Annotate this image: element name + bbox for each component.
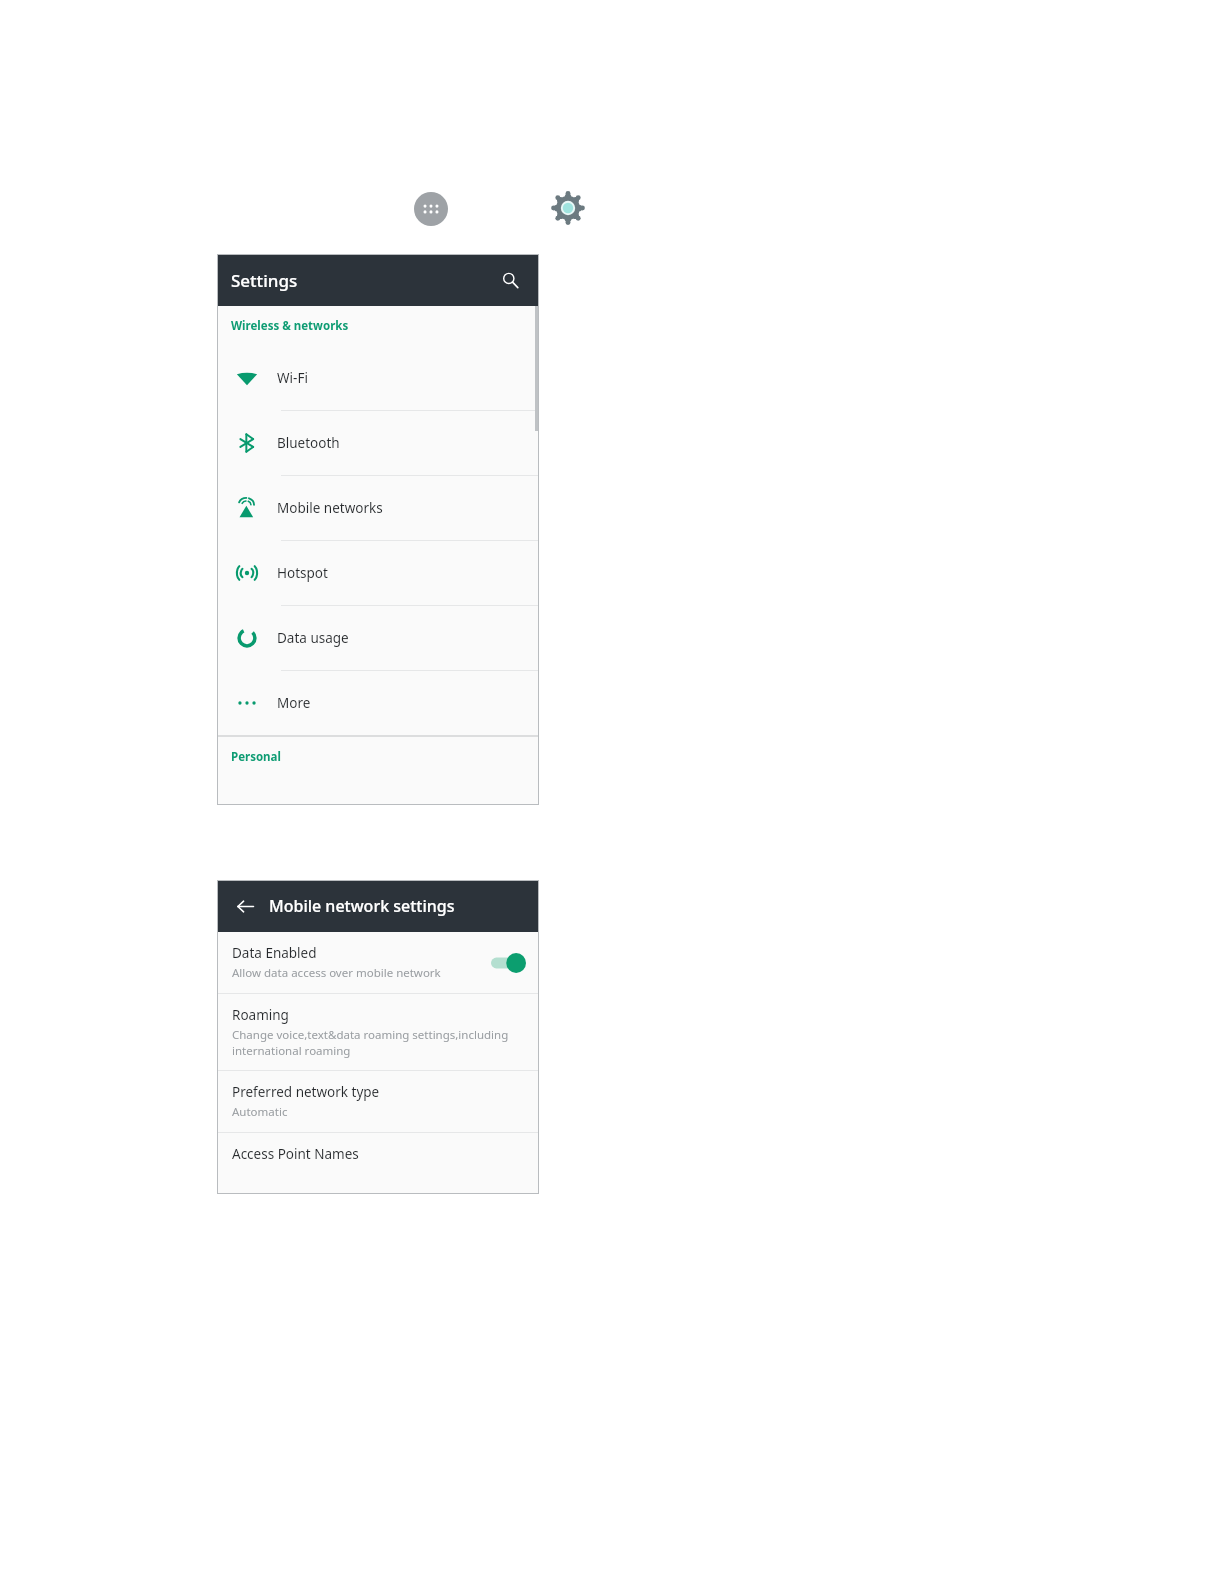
- button[interactable]: Back: [229, 890, 261, 922]
- staticText: Data Enabled: [232, 944, 317, 962]
- button[interactable]: Bluetooth: [217, 411, 539, 476]
- staticText: Mobile networks: [277, 499, 383, 517]
- button[interactable]: Hotspot: [217, 541, 539, 606]
- staticText: Hotspot: [277, 564, 328, 582]
- staticText: Roaming: [232, 1006, 289, 1024]
- staticText: Access Point Names: [232, 1145, 359, 1163]
- staticText: Allow data access over mobile network: [232, 965, 441, 981]
- staticText: Data usage: [277, 629, 349, 647]
- staticText: Settings: [231, 269, 495, 292]
- staticText: Bluetooth: [277, 434, 340, 452]
- button[interactable]: Data Enabled: [217, 932, 539, 994]
- button[interactable]: Access Point Names: [217, 1133, 539, 1175]
- staticText: Mobile network settings: [269, 895, 455, 917]
- staticText: Automatic: [232, 1104, 288, 1120]
- staticText: Preferred network type: [232, 1083, 380, 1101]
- button[interactable]: Roaming: [217, 994, 539, 1071]
- staticText: Wi-Fi: [277, 369, 308, 387]
- button[interactable]: Data usage: [217, 606, 539, 671]
- button[interactable]: Data Enabled toggle: [487, 950, 527, 976]
- button[interactable]: Mobile networks: [217, 476, 539, 541]
- button[interactable]: Preferred network type: [217, 1071, 539, 1133]
- staticText: Change voice,text&data roaming settings,…: [232, 1027, 509, 1058]
- staticText: Personal: [231, 749, 281, 765]
- staticText: More: [277, 694, 311, 712]
- button[interactable]: Search: [495, 265, 525, 295]
- button[interactable]: Wi-Fi: [217, 346, 539, 411]
- button[interactable]: More: [217, 671, 539, 735]
- staticText: Wireless & networks: [231, 318, 349, 334]
